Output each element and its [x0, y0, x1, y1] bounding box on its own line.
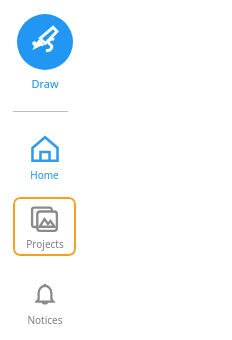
button[interactable]: Draw [8, 10, 82, 95]
staticText: Home [30, 168, 59, 182]
staticText: Notices [27, 313, 63, 327]
button[interactable]: Notices [13, 277, 76, 330]
button[interactable]: Home [13, 130, 76, 185]
staticText: Projects [26, 237, 64, 251]
button[interactable]: Projects [13, 197, 76, 256]
staticText: Draw [31, 76, 59, 91]
